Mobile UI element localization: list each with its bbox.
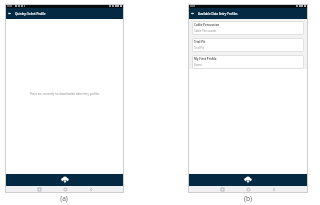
button[interactable]: Recents [26, 186, 52, 193]
staticText: Cable Percussion [194, 29, 217, 33]
staticText: There are currently no downloaded data e… [9, 92, 120, 96]
button[interactable]: Back [261, 186, 287, 193]
button[interactable]: Back [5, 8, 13, 19]
button[interactable]: Back [78, 186, 104, 193]
button[interactable]: My First Profile [192, 55, 304, 69]
staticText: Trial Pit [194, 40, 206, 44]
button[interactable]: Recents [209, 186, 235, 193]
button[interactable]: Back [188, 8, 196, 19]
staticText: My First Profile [194, 57, 217, 61]
button[interactable]: Trial Pit [192, 38, 304, 52]
button[interactable]: Download profiles [5, 174, 124, 186]
staticText: (b) [240, 194, 256, 203]
staticText: Trial Pit [194, 46, 204, 50]
button[interactable]: Download profiles [188, 174, 308, 186]
staticText: Available Data Entry Profiles [198, 12, 238, 16]
staticText: Demo [194, 63, 202, 67]
staticText: (a) [56, 194, 72, 203]
button[interactable]: Home [235, 186, 261, 193]
button[interactable]: Home [52, 186, 78, 193]
staticText: Cable Percussion [194, 23, 220, 27]
button[interactable]: Cable Percussion [192, 21, 304, 35]
staticText: Quinley: Select Profile [15, 12, 46, 16]
